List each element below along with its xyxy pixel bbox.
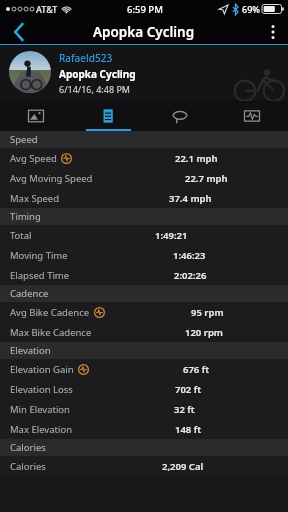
button[interactable]: Moving Time [0, 245, 288, 265]
staticText: 1:46:23 [173, 249, 206, 262]
staticText: Total [10, 229, 32, 242]
button[interactable]: Back [0, 18, 38, 45]
button[interactable]: Max Speed [0, 188, 288, 208]
button[interactable]: More options [258, 18, 288, 45]
staticText: Elevation Loss [10, 383, 73, 396]
staticText: 2,209 Cal [162, 460, 204, 473]
button[interactable]: Elevation Gain [0, 359, 288, 379]
button[interactable]: Elapsed Time [0, 265, 288, 285]
staticText: Max Speed [10, 192, 60, 205]
staticText: Max Elevation [10, 423, 72, 436]
staticText: Elevation [10, 344, 51, 357]
button[interactable]: Photos [0, 101, 72, 131]
staticText: 148 ft [175, 423, 202, 436]
button[interactable]: Laps [144, 101, 216, 131]
staticText: Max Bike Cadence [10, 326, 92, 339]
staticText: Apopka Cycling [93, 23, 195, 41]
staticText: 22.7 mph [185, 172, 228, 185]
button[interactable]: Calories [0, 456, 288, 476]
staticText: Rafaeld523 [59, 51, 113, 65]
staticText: Calories [10, 441, 46, 454]
staticText: 6:59 PM [127, 3, 163, 16]
staticText: 2:02:26 [174, 269, 207, 282]
staticText: 95 rpm [191, 306, 224, 319]
staticText: Elevation Gain [10, 363, 74, 376]
staticText: Min Elevation [10, 403, 70, 416]
button[interactable]: Details [72, 101, 144, 131]
staticText: Elapsed Time [10, 269, 70, 282]
button[interactable]: Min Elevation [0, 399, 288, 419]
staticText: 120 rpm [185, 326, 223, 339]
staticText: Calories [10, 460, 46, 473]
staticText: Cadence [10, 287, 49, 300]
button[interactable]: Charts [216, 101, 288, 131]
staticText: Timing [10, 210, 41, 223]
staticText: 6/14/16, 4:48 PM [59, 83, 130, 95]
staticText: 32 ft [174, 403, 195, 416]
staticText: Apopka Cycling [59, 67, 136, 81]
button[interactable]: Elevation Loss [0, 379, 288, 399]
button[interactable]: Avg Bike Cadence [0, 302, 288, 322]
staticText: 22.1 mph [175, 152, 218, 165]
staticText: 69% [242, 3, 260, 15]
staticText: Avg Moving Speed [10, 172, 93, 185]
staticText: 702 ft [175, 383, 202, 396]
button[interactable]: Total [0, 225, 288, 245]
button[interactable]: Max Elevation [0, 419, 288, 439]
staticText: AT&T [36, 3, 58, 15]
staticText: 676 ft [183, 363, 210, 376]
staticText: Avg Bike Cadence [10, 306, 90, 319]
button[interactable]: Max Bike Cadence [0, 322, 288, 342]
button[interactable]: Avg Moving Speed [0, 168, 288, 188]
staticText: 37.4 mph [169, 192, 212, 205]
staticText: Avg Speed [10, 152, 57, 165]
button[interactable]: Avg Speed [0, 148, 288, 168]
staticText: Speed [10, 133, 38, 146]
staticText: Moving Time [10, 249, 68, 262]
staticText: 1:49:21 [155, 229, 188, 242]
button[interactable]: Rafaeld523 [0, 45, 288, 101]
